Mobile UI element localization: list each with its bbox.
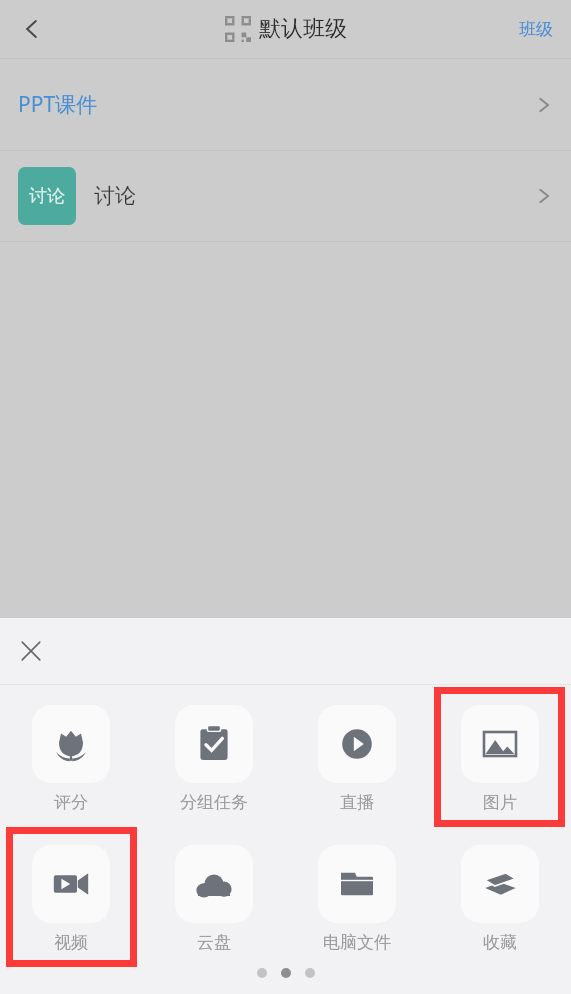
button[interactable]: 云盘 xyxy=(175,841,253,953)
button[interactable]: 讨论 xyxy=(0,151,571,241)
staticText: 图片 xyxy=(483,792,517,813)
button[interactable]: 分组任务 xyxy=(175,701,253,813)
staticText: 收藏 xyxy=(483,932,517,953)
button[interactable]: 班级 xyxy=(501,5,571,54)
staticText: 评分 xyxy=(54,792,88,813)
staticText: PPT课件 xyxy=(18,90,98,119)
staticText: 讨论 xyxy=(94,183,136,209)
button[interactable]: 视频 xyxy=(32,841,110,953)
button[interactable]: 评分 xyxy=(32,701,110,813)
staticText: 默认班级 xyxy=(259,15,347,43)
staticText: 视频 xyxy=(54,932,88,953)
button[interactable]: 图片 xyxy=(461,701,539,813)
button[interactable]: PPT课件 xyxy=(0,59,571,150)
staticText: 讨论 xyxy=(29,185,65,208)
button[interactable]: 收藏 xyxy=(461,841,539,953)
staticText: 分组任务 xyxy=(180,792,248,813)
staticText: 电脑文件 xyxy=(323,932,391,953)
button[interactable]: 电脑文件 xyxy=(318,841,396,953)
staticText: 直播 xyxy=(340,792,374,813)
button[interactable]: Back xyxy=(6,3,58,55)
button[interactable]: 直播 xyxy=(318,701,396,813)
staticText: 班级 xyxy=(519,19,553,40)
staticText: 云盘 xyxy=(197,932,231,953)
button[interactable]: Close xyxy=(8,628,54,674)
